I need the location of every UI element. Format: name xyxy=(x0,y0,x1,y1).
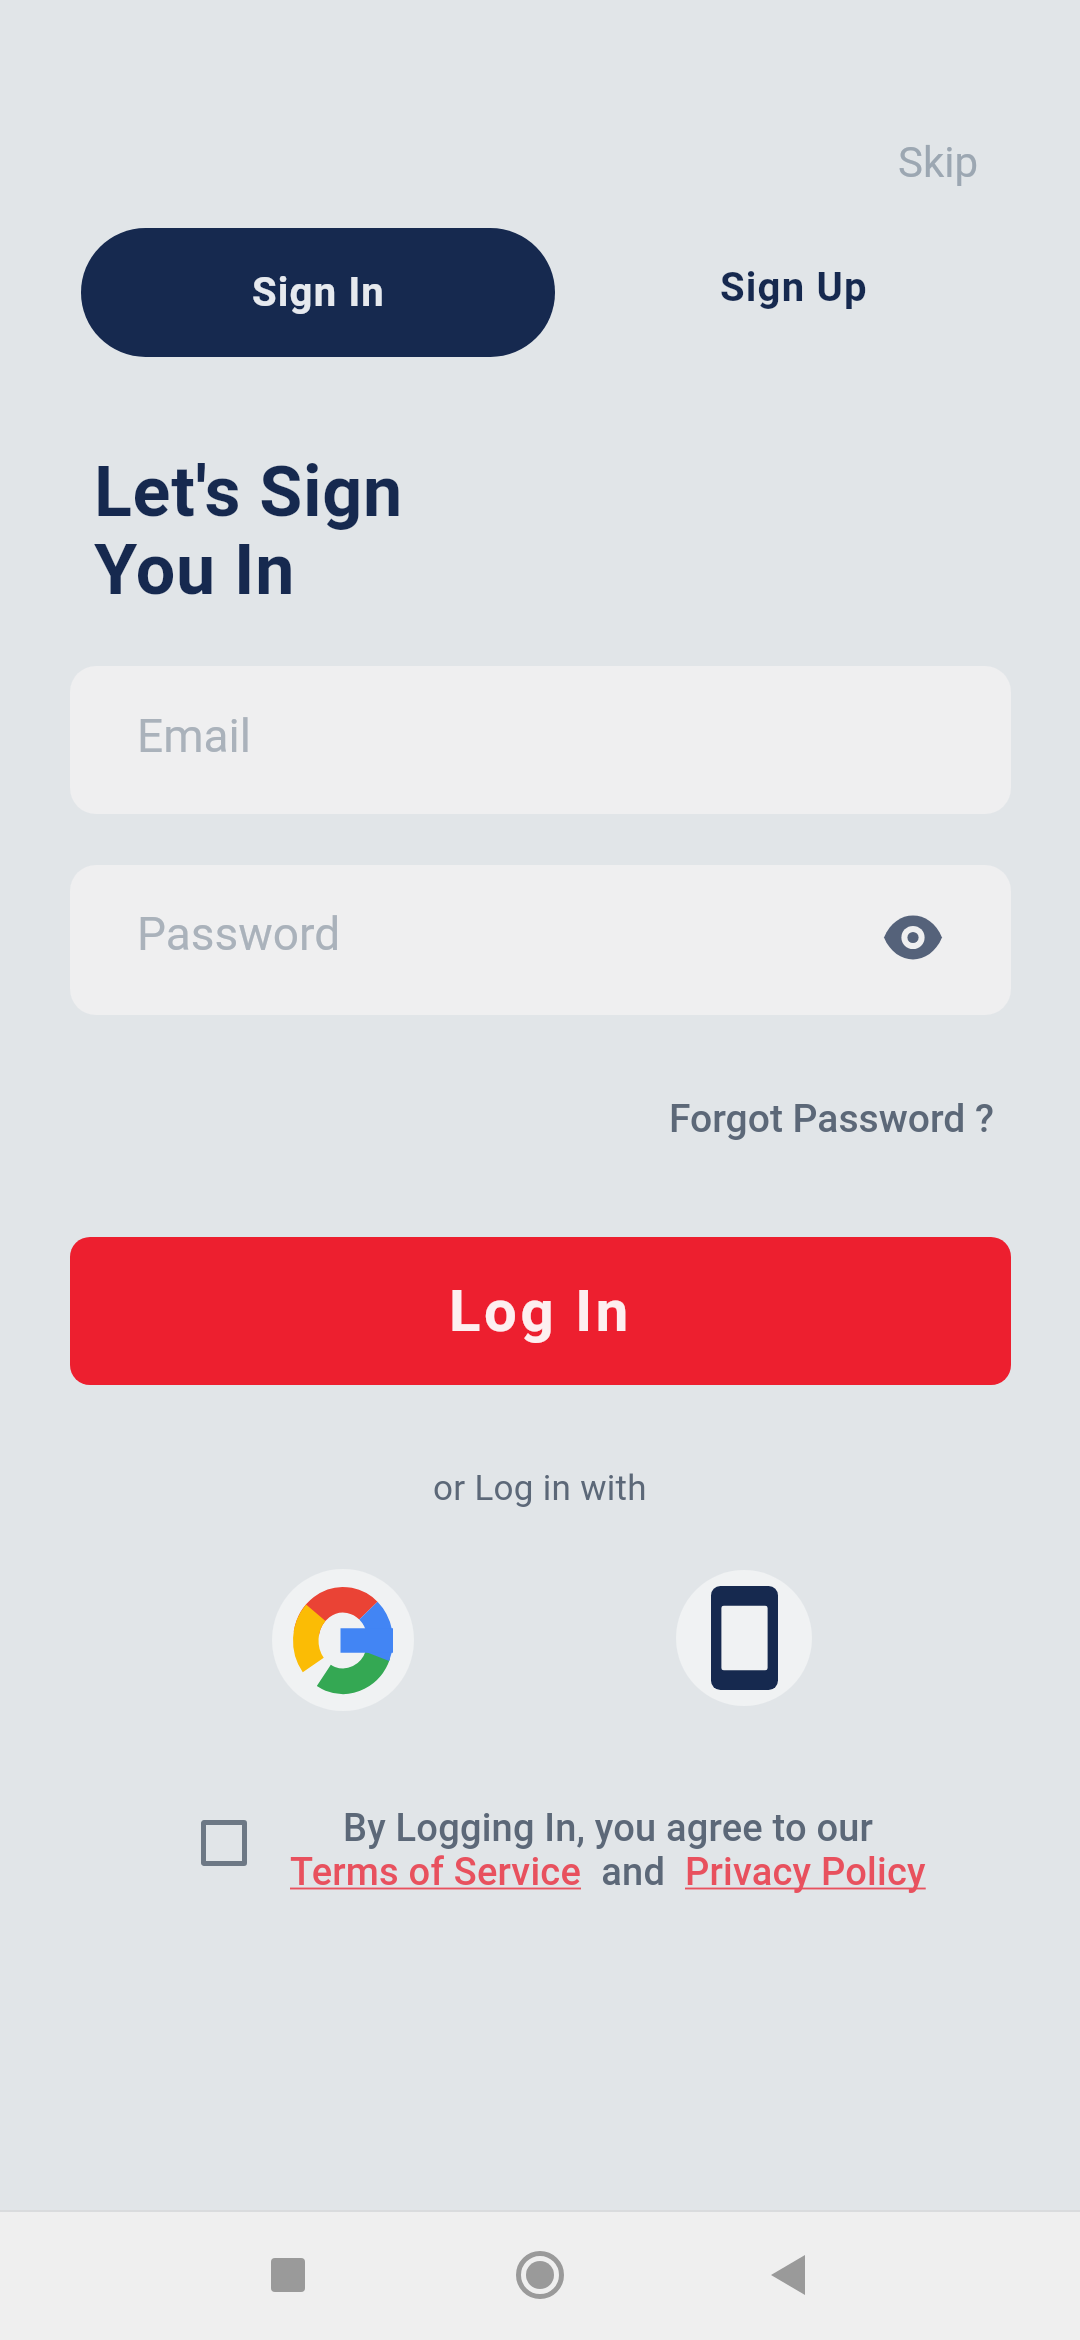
staticText: Forgot Password ? xyxy=(669,1096,995,1142)
staticText: Skip xyxy=(898,138,979,187)
button[interactable]: Privacy Policy xyxy=(685,1850,926,1895)
button[interactable]: Home xyxy=(500,2235,580,2315)
staticText: Let's Sign You In xyxy=(94,451,403,611)
button[interactable]: Sign in with Google xyxy=(272,1569,414,1711)
staticText: By Logging In, you agree to our xyxy=(343,1806,874,1851)
button[interactable]: Show password xyxy=(864,888,962,986)
button[interactable]: Terms of Service xyxy=(290,1850,582,1895)
button[interactable]: Back xyxy=(748,2235,828,2315)
staticText: Password xyxy=(137,907,341,961)
staticText: or Log in with xyxy=(433,1468,647,1509)
button[interactable]: Agree to terms xyxy=(201,1820,247,1866)
staticText: and xyxy=(582,1850,685,1895)
button[interactable]: Sign In xyxy=(81,228,555,357)
button[interactable]: Sign Up xyxy=(706,246,882,329)
button[interactable]: Email xyxy=(70,666,1011,814)
button[interactable]: Sign in with phone xyxy=(676,1570,812,1706)
staticText: Log In xyxy=(449,1277,632,1345)
button[interactable]: Password xyxy=(70,865,1011,1015)
button[interactable]: Skip xyxy=(886,126,991,199)
staticText: Email xyxy=(137,709,251,763)
button[interactable]: Recent apps xyxy=(248,2235,328,2315)
staticText: Sign In xyxy=(252,269,385,316)
button[interactable]: Log In xyxy=(70,1237,1011,1385)
button[interactable]: Forgot Password ? xyxy=(657,1084,1007,1154)
staticText: Sign Up xyxy=(720,264,868,311)
